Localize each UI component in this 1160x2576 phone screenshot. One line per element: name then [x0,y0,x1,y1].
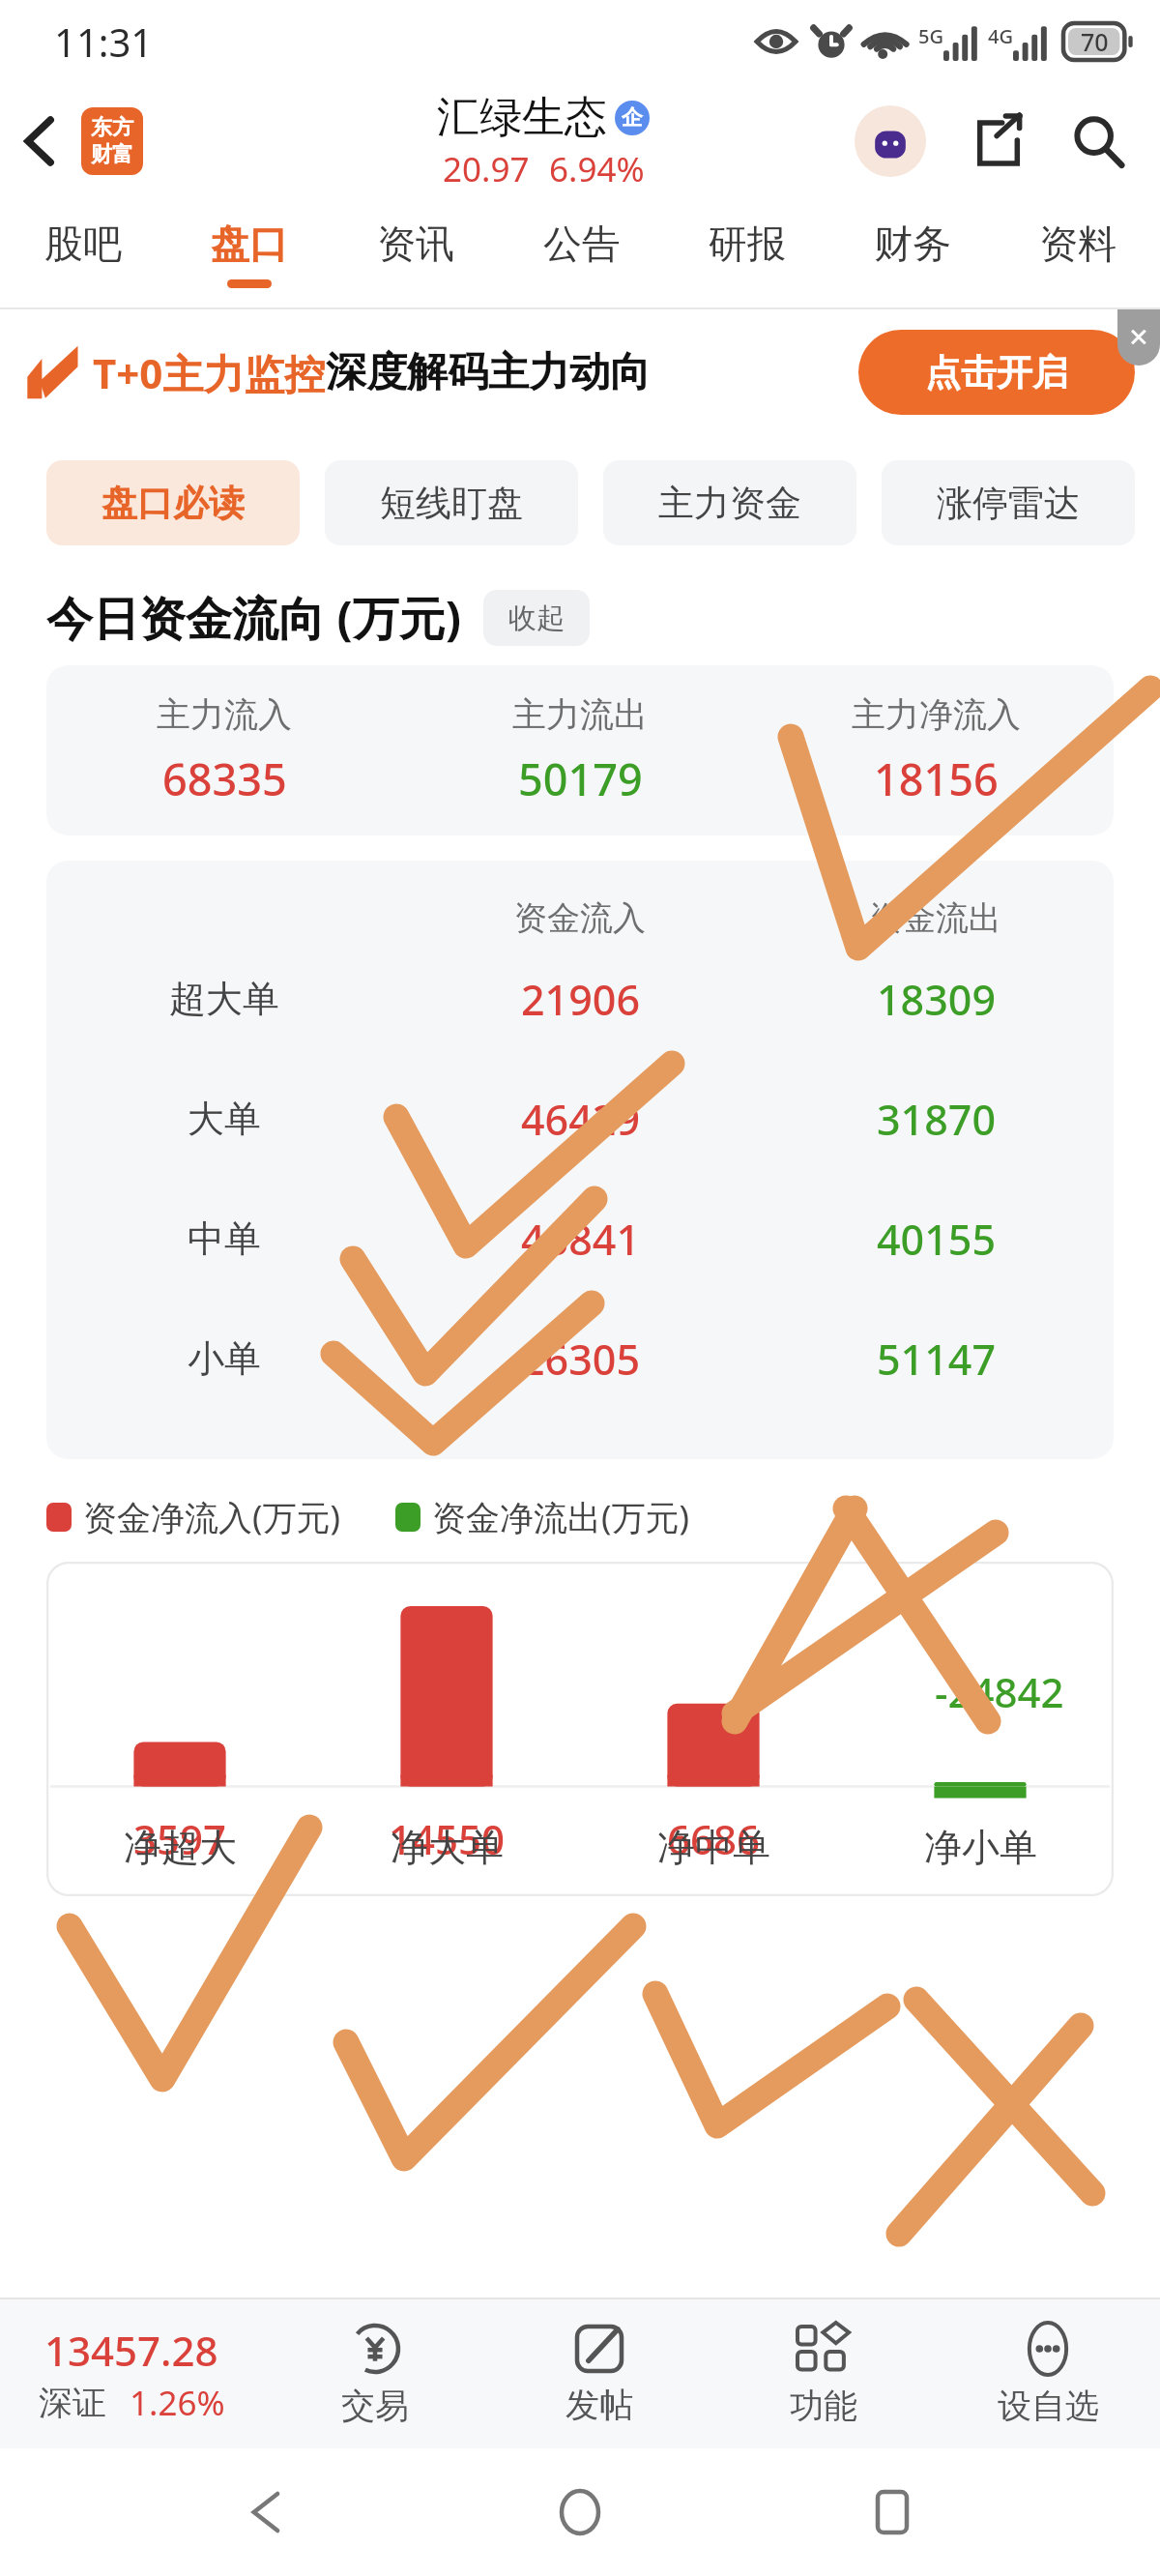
staticText: 深度解码主力动向 [326,347,651,398]
staticText: 主力流入 [157,693,292,736]
button[interactable]: Share [963,105,1034,177]
staticText: 14550 [389,1811,506,1866]
button[interactable]: 超大单 [46,939,1114,1059]
staticText: 中单 [188,1215,261,1262]
staticText: 68335 [162,749,287,808]
staticText: 1.26% [130,2380,225,2426]
staticText: 点击开启 [925,350,1068,395]
staticText: 26305 [521,1331,640,1388]
staticText: 资金净流入(万元) [83,1494,341,1540]
staticText: 资讯 [377,220,454,268]
button[interactable]: Back [6,106,75,176]
staticText: 研报 [709,220,786,268]
staticText: 盘口 [211,220,288,268]
staticText: 财富 [91,141,133,168]
staticText: 资金流出 [870,897,1001,939]
button[interactable]: 主力净流入 [758,665,1114,835]
button[interactable]: 收起 [483,590,590,646]
button[interactable]: 主力资金 [603,460,856,545]
staticText: 主力流出 [512,693,648,736]
button[interactable]: 财务 [829,199,995,307]
button[interactable]: 发帖 [487,2299,711,2448]
staticText: 11:31 [54,15,154,68]
staticText: 深证 [39,2382,106,2424]
button[interactable]: Close advertisement [1117,309,1160,366]
staticText: 汇绿生态 [437,91,607,144]
button[interactable]: 公告 [499,199,664,307]
button[interactable]: 点击开启 [858,330,1135,415]
staticText: 3597 [133,1811,227,1866]
button[interactable]: 盘口 [166,199,333,307]
staticText: -24842 [935,1664,1064,1719]
staticText: 5G [918,23,943,49]
staticText: 21906 [521,971,640,1028]
staticText: 东方 [91,114,133,141]
staticText: 40155 [877,1211,996,1268]
staticText: 净小单 [924,1824,1037,1871]
staticText: 资金流入 [514,897,646,939]
staticText: 净超大 [124,1824,237,1871]
staticText: 净大单 [391,1824,504,1871]
staticText: 今日资金流向 (万元) [46,586,462,650]
button[interactable]: 短线盯盘 [325,460,578,545]
staticText: 短线盯盘 [380,481,523,526]
staticText: 股吧 [44,220,122,268]
button[interactable]: 交易 [263,2299,487,2448]
staticText: 涨停雷达 [937,481,1080,526]
button[interactable]: Back [223,2468,312,2557]
staticText: 4G [988,23,1013,49]
staticText: 51147 [877,1331,996,1388]
button[interactable]: 盘口必读 [46,460,300,545]
staticText: 6.94% [549,146,645,192]
staticText: 收起 [508,600,565,636]
staticText: 资料 [1039,220,1116,268]
staticText: 净中单 [657,1824,770,1871]
button[interactable]: 大单 [46,1059,1114,1179]
staticText: ✕ [1128,323,1149,352]
staticText: 20.97 [443,146,530,192]
button[interactable]: Home [536,2468,624,2557]
button[interactable]: 东方财富 [81,107,143,175]
button[interactable]: 涨停雷达 [882,460,1135,545]
staticText: 小单 [188,1335,261,1382]
button[interactable]: Profile avatar [855,105,926,177]
staticText: 13457.28 [44,2323,218,2378]
staticText: 发帖 [565,2384,633,2426]
staticText: 50179 [518,749,643,808]
staticText: 46429 [521,1091,640,1148]
button[interactable]: Recent apps [848,2468,937,2557]
button[interactable]: 设自选 [936,2299,1160,2448]
button[interactable]: 功能 [711,2299,936,2448]
button[interactable]: 主力流出 [402,665,758,835]
button[interactable]: 资讯 [333,199,499,307]
staticText: 交易 [341,2385,409,2427]
button[interactable]: 中单 [46,1179,1114,1299]
staticText: 18156 [874,749,999,808]
staticText: 资金净流出(万元) [432,1494,690,1540]
staticText: 46841 [521,1211,640,1268]
staticText: 主力净流入 [852,693,1021,736]
staticText: 企 [622,104,643,132]
staticText: 超大单 [169,976,279,1022]
button[interactable]: Search [1059,102,1137,180]
staticText: 主力资金 [658,481,801,526]
button[interactable]: 股吧 [0,199,166,307]
staticText: T+0主力监控 [93,345,326,400]
button[interactable]: 主力流入 [46,665,402,835]
staticText: 6686 [667,1811,761,1866]
button[interactable]: 研报 [664,199,829,307]
button[interactable]: 3597 [46,1562,1114,1896]
button[interactable]: 小单 [46,1299,1114,1419]
staticText: 公告 [543,220,621,268]
staticText: 财务 [874,220,951,268]
button[interactable]: 资料 [995,199,1160,307]
staticText: 18309 [877,971,996,1028]
button[interactable]: 13457.28 [0,2299,263,2448]
staticText: 盘口必读 [101,481,245,526]
staticText: 大单 [188,1096,261,1142]
staticText: 70 [1081,25,1109,58]
staticText: 31870 [877,1091,996,1148]
staticText: 设自选 [998,2385,1099,2427]
staticText: 功能 [790,2385,857,2427]
